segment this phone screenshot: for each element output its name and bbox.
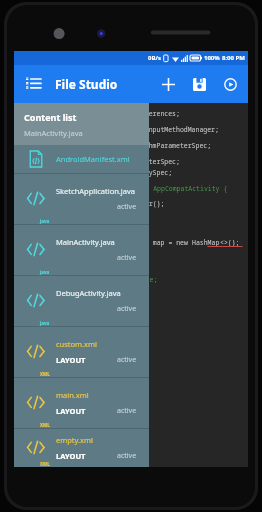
button[interactable]: Save	[188, 73, 210, 95]
staticText: SketchApplication.java	[56, 186, 135, 196]
staticText: HashMap	[192, 238, 220, 247]
button[interactable]: java	[14, 225, 149, 275]
staticText: false;	[134, 275, 158, 284]
staticText: LAYOUT	[56, 406, 86, 416]
staticText: MainActivity	[71, 184, 122, 193]
staticText: MainActivity.java	[24, 128, 83, 138]
button[interactable]: Open navigation drawer	[21, 72, 45, 96]
staticText: import javax.crypto.spec.SecretKeySpec;	[20, 168, 173, 177]
staticText: import java.security.spec.AlgorithmParam…	[20, 141, 212, 150]
staticText: custom.xml	[56, 339, 98, 349]
staticText: 100%	[204, 54, 220, 62]
staticText: extends AppCompatActivity {	[122, 184, 228, 193]
staticText: import android.content.SharedPreferences…	[20, 109, 180, 118]
staticText: Content list	[24, 111, 77, 123]
staticText: active	[117, 253, 137, 263]
button[interactable]: Add	[157, 73, 179, 95]
staticText: active	[117, 406, 137, 416]
staticText: LAYOUT	[56, 355, 86, 365]
staticText: java	[40, 269, 50, 275]
staticText: AndroidManifest.xml	[56, 154, 130, 164]
staticText: java	[40, 218, 50, 224]
staticText: 0B/s	[148, 54, 161, 62]
staticText: XML	[40, 422, 50, 428]
staticText: 8:00 PM	[222, 54, 245, 62]
button[interactable]: XML	[14, 327, 149, 377]
button[interactable]: XML	[14, 378, 149, 428]
staticText: private boolean isActive =	[28, 275, 134, 284]
button[interactable]: java	[14, 276, 149, 326]
staticText: File Studio	[55, 76, 118, 92]
button[interactable]: Run	[219, 73, 241, 95]
button[interactable]: XML	[14, 429, 149, 467]
staticText: java	[40, 320, 50, 326]
staticText: public class	[20, 184, 71, 193]
staticText: import android.view.inputmethod.InputMet…	[20, 125, 219, 134]
staticText: DebugActivity.java	[56, 288, 121, 298]
staticText: LAYOUT	[56, 451, 86, 461]
staticText: MainActivity.java	[56, 237, 115, 247]
staticText: private Timer _timer = new Timer();	[28, 199, 165, 208]
staticText: <>();	[220, 238, 240, 247]
staticText: import javax.crypto.spec.IvParameterSpec…	[20, 157, 180, 166]
staticText: empty.xml	[56, 435, 94, 445]
staticText: active	[117, 202, 137, 212]
button[interactable]: AndroidManifest.xml	[14, 145, 149, 173]
staticText: active	[117, 304, 137, 314]
staticText: private HashMap<String, Object> map = ne…	[28, 238, 192, 247]
staticText: active	[117, 355, 137, 365]
staticText: active	[117, 451, 137, 461]
staticText: XML	[40, 461, 50, 467]
staticText: XML	[40, 371, 50, 377]
button[interactable]: java	[14, 174, 149, 224]
staticText: main.xml	[56, 390, 89, 400]
